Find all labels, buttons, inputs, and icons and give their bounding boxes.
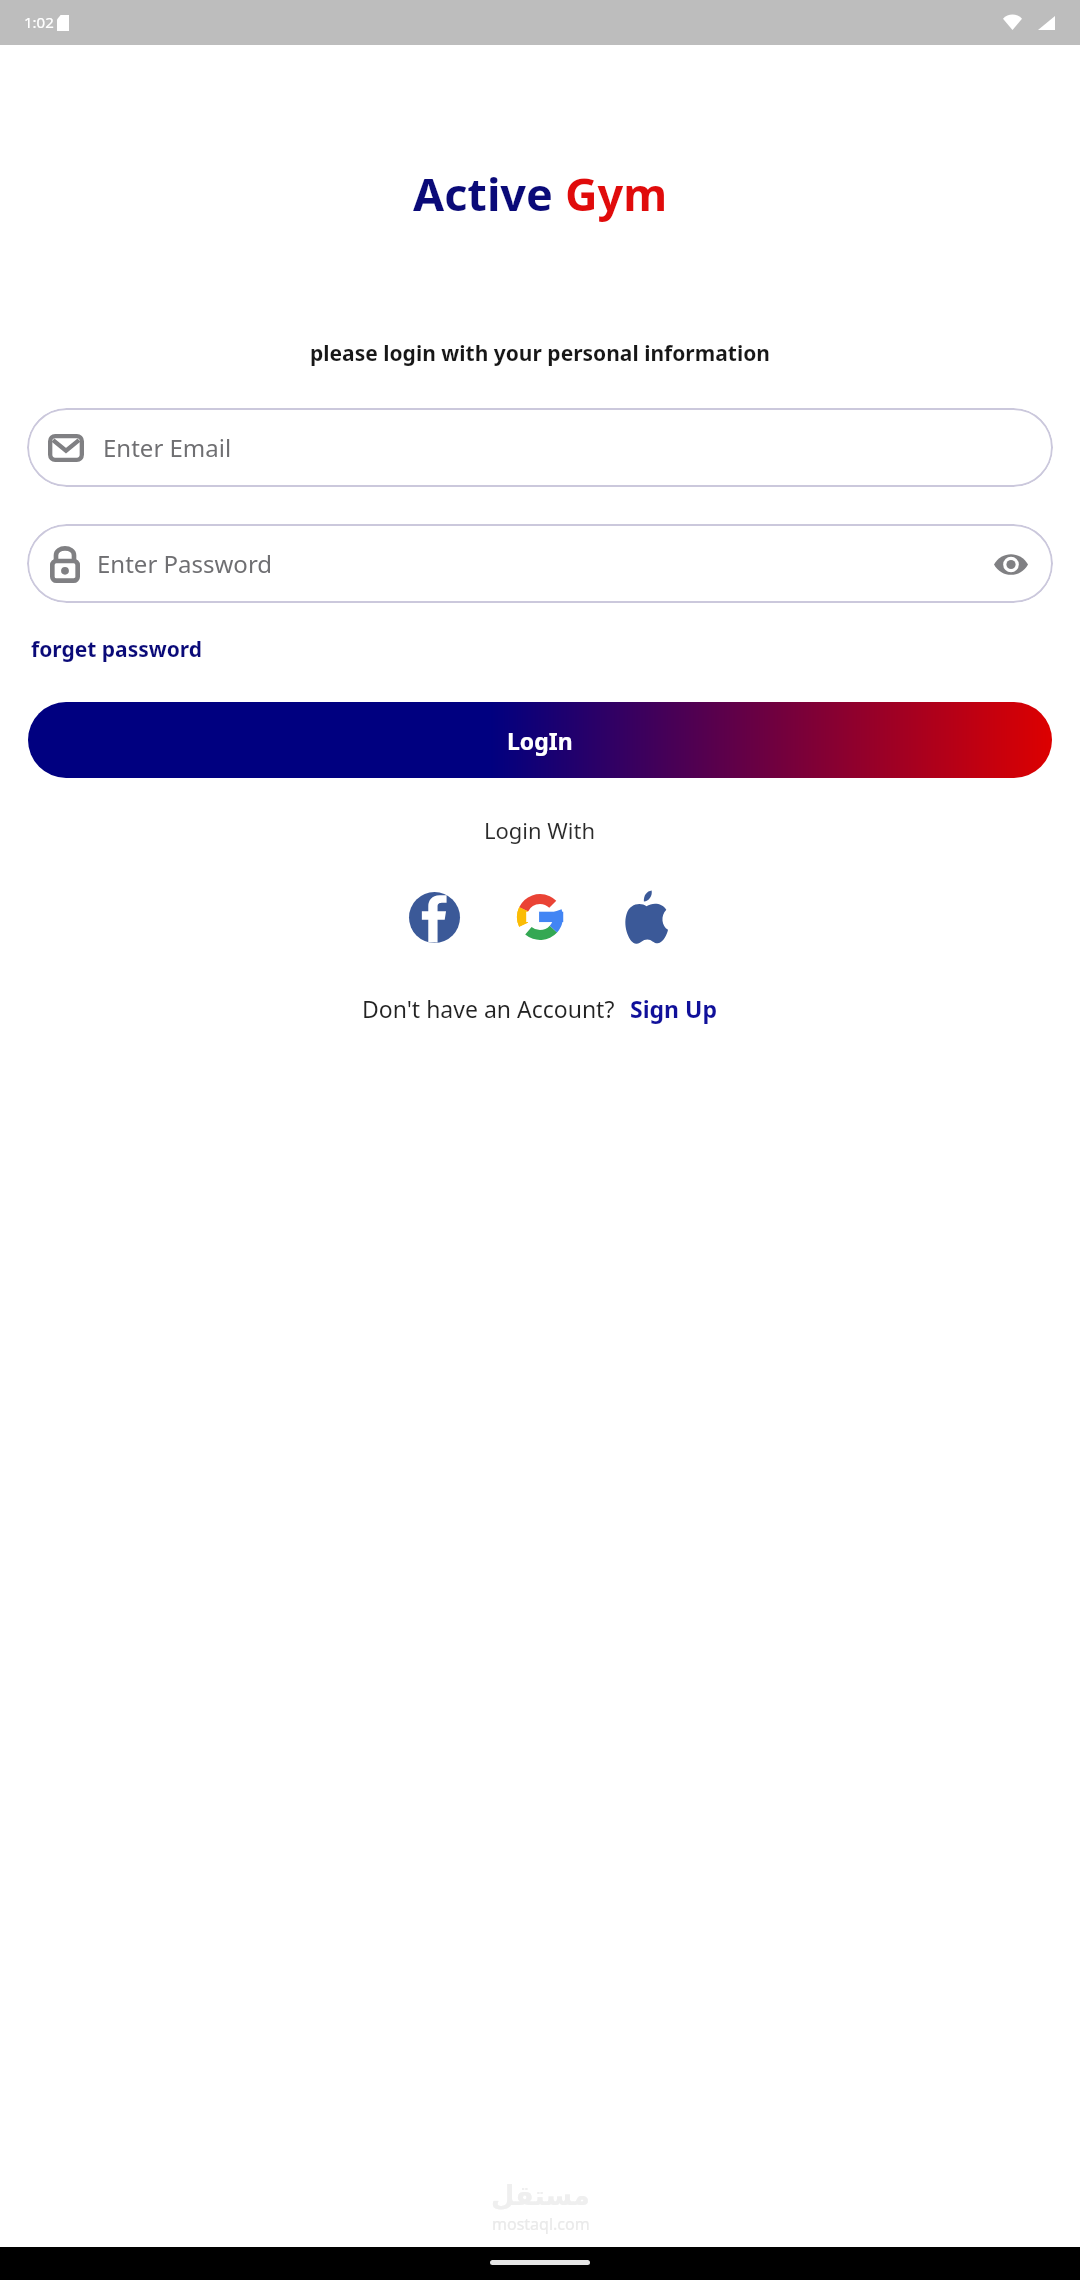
button[interactable]: Login with Facebook: [407, 890, 461, 944]
button[interactable]: Login with Google: [513, 890, 567, 944]
button[interactable]: Enter Password: [27, 524, 1053, 603]
staticText: LogIn: [507, 725, 573, 756]
staticText: Enter Password: [97, 547, 991, 580]
button[interactable]: Sign Up: [628, 989, 719, 1028]
button[interactable]: Show password: [991, 544, 1031, 584]
button[interactable]: forget password: [25, 630, 209, 669]
button[interactable]: Login with Apple: [619, 890, 673, 944]
button[interactable]: Enter Email: [27, 408, 1053, 487]
staticText: please login with your personal informat…: [310, 339, 770, 368]
button[interactable]: LogIn: [28, 702, 1052, 778]
staticText: Enter Email: [103, 431, 232, 464]
staticText: Active: [413, 163, 565, 224]
staticText: مستقل: [491, 2180, 590, 2211]
staticText: 1:02: [24, 12, 54, 32]
staticText: Don't have an Account?: [362, 993, 615, 1024]
staticText: Gym: [565, 163, 668, 224]
staticText: mostaql.com: [492, 2213, 590, 2235]
staticText: Login With: [484, 815, 596, 845]
